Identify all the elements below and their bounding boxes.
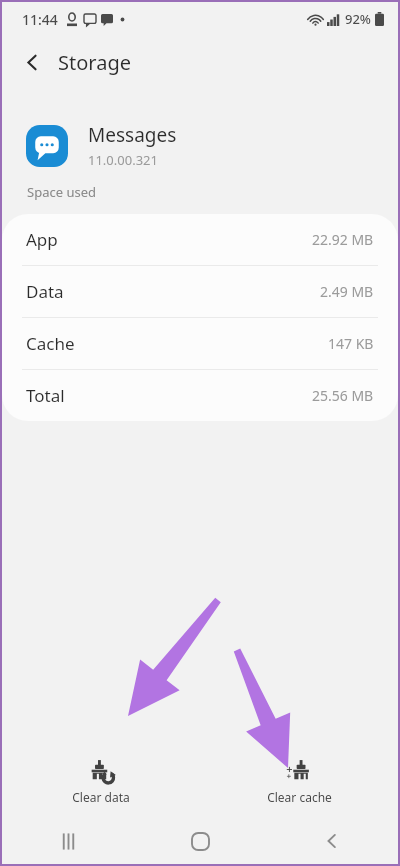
button[interactable]: Recents <box>36 818 100 864</box>
button[interactable]: Clear cache <box>200 752 398 811</box>
button[interactable]: Home <box>168 818 232 864</box>
staticText: 147 KB <box>328 334 374 353</box>
staticText: 11.0.00.321 <box>88 151 158 169</box>
button[interactable]: Cache <box>2 318 398 370</box>
staticText: Storage <box>58 49 131 76</box>
button[interactable]: Data <box>2 266 398 318</box>
staticText: 22.92 MB <box>312 230 374 249</box>
staticText: 2.49 MB <box>320 282 374 301</box>
staticText: Space used <box>27 183 96 201</box>
staticText: 92% <box>345 10 371 28</box>
staticText: Messages <box>88 122 177 148</box>
button[interactable]: Back <box>10 40 54 84</box>
staticText: 25.56 MB <box>312 386 374 405</box>
staticText: Data <box>26 280 64 303</box>
staticText: Cache <box>26 332 75 355</box>
staticText: Clear data <box>72 789 130 805</box>
staticText: App <box>26 228 58 251</box>
staticText: Total <box>26 384 65 407</box>
staticText: Clear cache <box>267 789 332 805</box>
button[interactable]: Clear data <box>2 752 200 811</box>
button[interactable]: Total <box>2 370 398 421</box>
button[interactable]: Back <box>300 818 364 864</box>
button[interactable]: App <box>2 214 398 266</box>
staticText: 11:44 <box>22 10 58 29</box>
